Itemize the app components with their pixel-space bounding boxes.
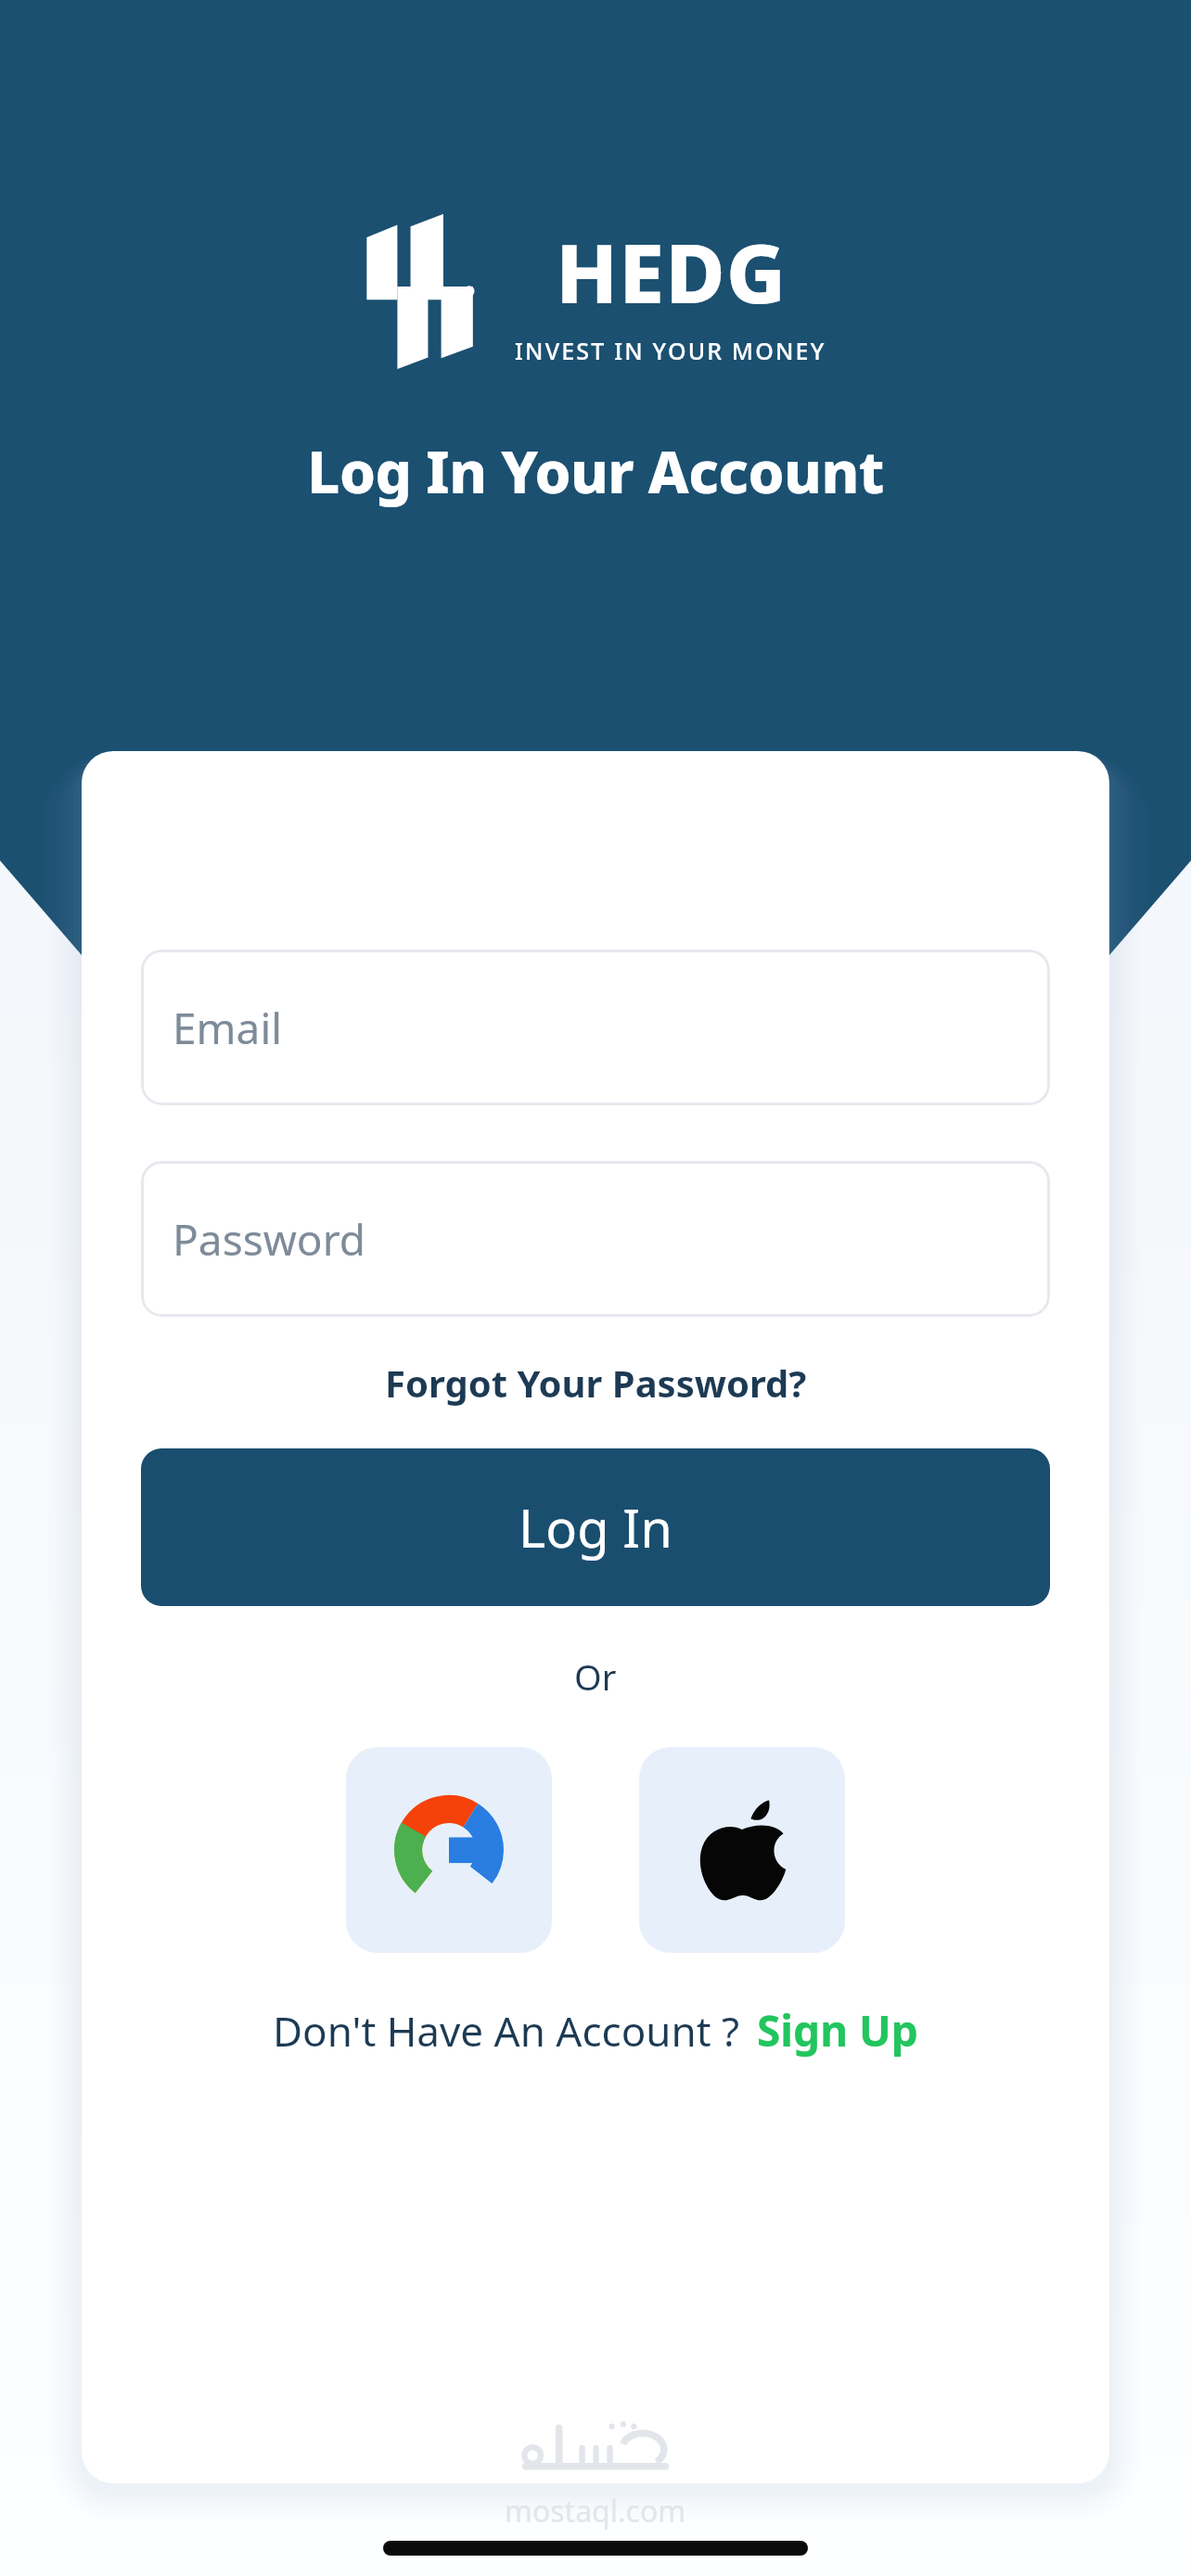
staticText: Don't Have An Account ?	[273, 2003, 740, 2059]
staticText: Email	[173, 999, 283, 1057]
staticText: Sign Up	[757, 2001, 918, 2060]
staticText: Password	[173, 1210, 366, 1269]
staticText: Log In	[519, 1492, 672, 1562]
button[interactable]: Sign in with Apple	[639, 1747, 845, 1953]
button[interactable]: Forgot Your Password?	[82, 1358, 1109, 1408]
button[interactable]: Email	[141, 950, 1050, 1105]
staticText: Or	[574, 1652, 617, 1701]
button[interactable]: Sign in with Google	[346, 1747, 552, 1953]
staticText: Log In Your Account	[307, 432, 884, 510]
staticText: INVEST IN YOUR MONEY	[515, 335, 826, 366]
staticText: mostaql.com	[505, 2491, 686, 2531]
staticText: HEDG	[556, 216, 787, 327]
button[interactable]: Password	[141, 1161, 1050, 1317]
staticText: Forgot Your Password?	[385, 1358, 807, 1408]
button[interactable]: Log In	[141, 1448, 1050, 1606]
button[interactable]: Sign Up	[757, 2001, 918, 2060]
